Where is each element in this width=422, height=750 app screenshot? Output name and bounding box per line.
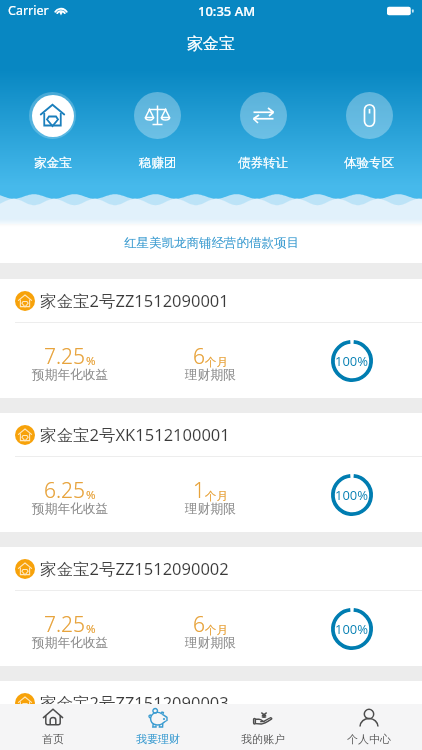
staticText: 100% [335, 486, 369, 504]
staticText: 红星美凯龙商铺经营的借款项目 [124, 235, 299, 251]
staticText: 首页 [42, 732, 64, 746]
button[interactable]: 家金宝2号ZZ1512090003 [0, 681, 422, 750]
staticText: 7.25 [44, 729, 86, 750]
staticText: Carrier [8, 2, 49, 19]
staticText: 体验专区 [344, 155, 394, 171]
staticText: 100% [335, 729, 369, 747]
staticText: 家金宝2号ZZ1512090002 [40, 557, 229, 580]
staticText: 理财期限 [185, 635, 236, 651]
staticText: 100% [335, 352, 369, 370]
staticText: 100% [335, 620, 369, 638]
button[interactable]: 个人中心 [316, 704, 422, 750]
staticText: 1 [193, 476, 205, 505]
staticText: 6.25 [44, 476, 86, 505]
staticText: 个月 [205, 623, 228, 637]
staticText: % [86, 487, 96, 503]
staticText: 家金宝 [187, 34, 235, 54]
staticText: 7.25 [44, 610, 86, 639]
staticText: 债券转让 [238, 155, 288, 171]
staticText: 家金宝 [34, 155, 72, 171]
staticText: 家金宝2号ZZ1512090003 [40, 691, 229, 714]
button[interactable]: 我的账户 [210, 704, 316, 750]
staticText: 10:35 AM [198, 2, 256, 20]
staticText: 理财期限 [185, 367, 236, 383]
button[interactable]: 家金宝2号XK1512100001 [0, 413, 422, 532]
staticText: % [86, 353, 96, 369]
staticText: 预期年化收益 [32, 635, 109, 651]
button[interactable]: 我要理财 [105, 704, 210, 750]
staticText: 个人中心 [347, 732, 391, 746]
staticText: 个月 [205, 489, 228, 503]
button[interactable]: 首页 [0, 704, 105, 750]
staticText: 6 [193, 342, 205, 371]
staticText: 7.25 [44, 342, 86, 371]
staticText: 家金宝2号ZZ1512090001 [40, 289, 229, 312]
staticText: 预期年化收益 [32, 367, 109, 383]
button[interactable]: 债券转让 [210, 92, 316, 171]
staticText: % [86, 621, 96, 637]
staticText: 家金宝2号XK1512100001 [40, 423, 230, 446]
button[interactable]: 稳赚团 [105, 92, 210, 171]
staticText: 稳赚团 [139, 155, 177, 171]
staticText: 个月 [205, 355, 228, 369]
button[interactable]: 家金宝 [0, 92, 105, 171]
button[interactable]: 家金宝2号ZZ1512090001 [0, 279, 422, 398]
staticText: 理财期限 [185, 501, 236, 517]
button[interactable]: 红星美凯龙商铺经营的借款项目 [0, 227, 422, 263]
button[interactable]: 体验专区 [316, 92, 422, 171]
staticText: 我要理财 [136, 732, 180, 746]
staticText: 预期年化收益 [32, 501, 109, 517]
button[interactable]: 家金宝2号ZZ1512090002 [0, 547, 422, 666]
staticText: 我的账户 [241, 732, 285, 746]
staticText: 6 [193, 610, 205, 639]
